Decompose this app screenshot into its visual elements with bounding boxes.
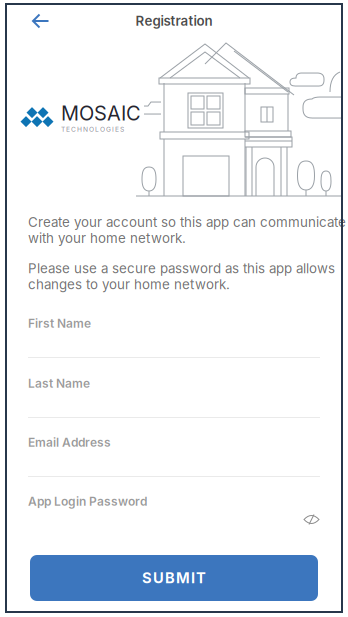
button[interactable]: Email Address xyxy=(0,0,320,491)
button[interactable]: Back xyxy=(18,6,64,36)
staticText: Create your account so this app can comm… xyxy=(28,214,346,246)
button[interactable]: S U B M I T xyxy=(30,555,318,601)
staticText: Email Address xyxy=(28,435,111,449)
button[interactable]: Show password xyxy=(303,513,320,526)
staticText: First Name xyxy=(28,316,91,330)
staticText: App Login Password xyxy=(28,494,147,508)
staticText: Please use a secure password as this app… xyxy=(28,260,335,293)
button[interactable]: App Login Password xyxy=(0,0,320,550)
staticText: T E C H N O L O G I E S xyxy=(61,125,124,133)
button[interactable]: First Name xyxy=(0,0,320,372)
staticText: Registration xyxy=(135,13,212,29)
staticText: Last Name xyxy=(28,376,90,390)
staticText: S U B M I T xyxy=(142,569,206,587)
staticText: MOSAIC xyxy=(61,101,141,125)
button[interactable]: Last Name xyxy=(0,0,320,432)
